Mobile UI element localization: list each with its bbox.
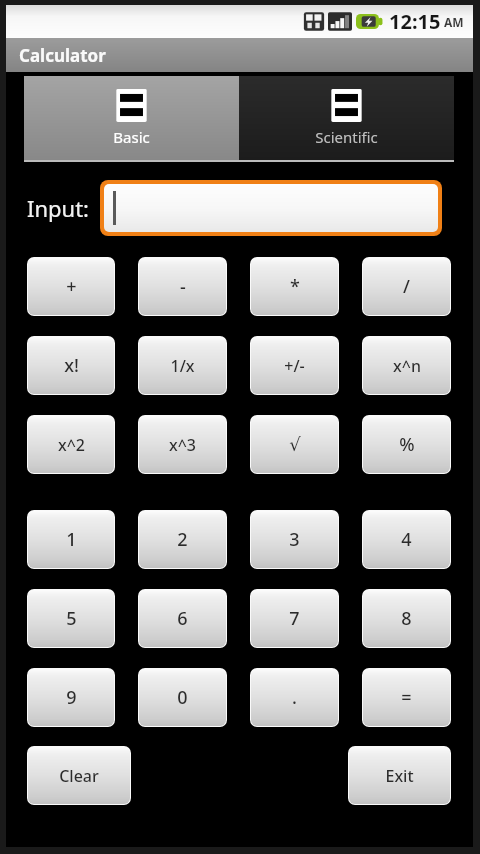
- staticText: 7: [289, 606, 300, 631]
- staticText: -: [180, 274, 186, 299]
- button[interactable]: [104, 184, 438, 232]
- button[interactable]: 5: [28, 590, 114, 647]
- button[interactable]: /: [363, 258, 450, 315]
- button[interactable]: +/-: [251, 337, 338, 394]
- button[interactable]: 4: [363, 511, 450, 568]
- staticText: Input:: [27, 193, 90, 223]
- staticText: *: [290, 274, 300, 299]
- staticText: x^n: [393, 355, 421, 377]
- button[interactable]: -: [139, 258, 226, 315]
- staticText: +/-: [284, 355, 305, 377]
- button[interactable]: 3: [251, 511, 338, 568]
- button[interactable]: Scientific: [239, 76, 454, 160]
- staticText: +: [66, 274, 77, 299]
- button[interactable]: x^2: [28, 416, 114, 473]
- staticText: %: [399, 432, 415, 457]
- button[interactable]: x!: [28, 337, 114, 394]
- button[interactable]: x^n: [363, 337, 450, 394]
- staticText: x^3: [169, 434, 196, 456]
- staticText: Exit: [385, 765, 414, 787]
- staticText: √: [289, 434, 301, 455]
- button[interactable]: 7: [251, 590, 338, 647]
- staticText: 0: [177, 685, 188, 710]
- button[interactable]: 0: [139, 669, 226, 726]
- staticText: Clear: [59, 765, 99, 787]
- button[interactable]: 6: [139, 590, 226, 647]
- button[interactable]: =: [363, 669, 450, 726]
- staticText: 2: [177, 527, 188, 552]
- staticText: Scientific: [315, 127, 378, 147]
- button[interactable]: 1: [28, 511, 114, 568]
- button[interactable]: 9: [28, 669, 114, 726]
- button[interactable]: √: [251, 416, 338, 473]
- staticText: 9: [66, 685, 77, 710]
- button[interactable]: +: [28, 258, 114, 315]
- staticText: =: [401, 685, 412, 710]
- button[interactable]: %: [363, 416, 450, 473]
- staticText: Calculator: [19, 44, 106, 67]
- staticText: /: [403, 274, 410, 299]
- staticText: 6: [177, 606, 188, 631]
- staticText: 8: [401, 606, 412, 631]
- staticText: 1/x: [170, 355, 195, 377]
- button[interactable]: 2: [139, 511, 226, 568]
- staticText: 12:15: [389, 8, 441, 35]
- staticText: 3: [289, 527, 300, 552]
- button[interactable]: 8: [363, 590, 450, 647]
- staticText: .: [292, 685, 297, 710]
- button[interactable]: *: [251, 258, 338, 315]
- button[interactable]: .: [251, 669, 338, 726]
- button[interactable]: Clear: [28, 747, 130, 804]
- staticText: x^2: [58, 434, 85, 456]
- staticText: 5: [66, 606, 77, 631]
- staticText: x!: [64, 353, 79, 378]
- button[interactable]: Basic: [24, 76, 239, 160]
- staticText: 4: [401, 527, 412, 552]
- staticText: Basic: [113, 127, 150, 147]
- staticText: 1: [66, 527, 77, 552]
- staticText: AM: [444, 14, 464, 30]
- button[interactable]: Exit: [349, 747, 450, 804]
- button[interactable]: 1/x: [139, 337, 226, 394]
- button[interactable]: x^3: [139, 416, 226, 473]
